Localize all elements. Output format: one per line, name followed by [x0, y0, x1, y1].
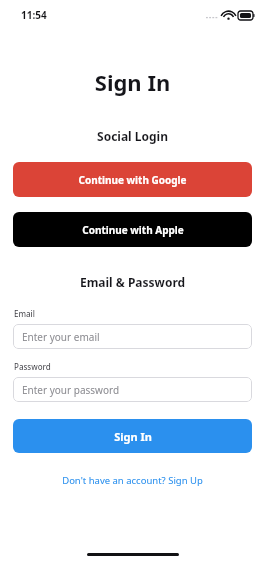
- button[interactable]: Continue with Google: [13, 162, 252, 197]
- staticText: Enter your email: [22, 330, 100, 344]
- staticText: Enter your password: [22, 383, 120, 397]
- staticText: Social Login: [0, 128, 265, 144]
- staticText: Email & Password: [0, 274, 265, 290]
- button[interactable]: Enter your password: [13, 377, 252, 402]
- button[interactable]: Enter your email: [13, 324, 252, 349]
- staticText: Don't have an account? Sign Up: [62, 474, 203, 487]
- button[interactable]: Sign In: [13, 419, 252, 453]
- staticText: Email: [14, 308, 265, 319]
- button[interactable]: Don't have an account? Sign Up: [0, 471, 265, 490]
- staticText: Continue with Google: [78, 173, 187, 187]
- staticText: Continue with Apple: [82, 223, 184, 237]
- staticText: Sign In: [114, 429, 152, 444]
- staticText: Password: [14, 361, 265, 372]
- staticText: 11:54: [21, 8, 47, 22]
- staticText: Sign In: [0, 67, 265, 97]
- button[interactable]: Continue with Apple: [13, 212, 252, 247]
